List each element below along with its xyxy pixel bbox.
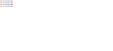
staticText: Here's a quick diag	[0, 5, 13, 7]
staticText: Here's a quick diag	[0, 2, 13, 4]
staticText: Here's a quick diag	[0, 3, 13, 5]
staticText: Here's a quick diag	[0, 0, 13, 2]
